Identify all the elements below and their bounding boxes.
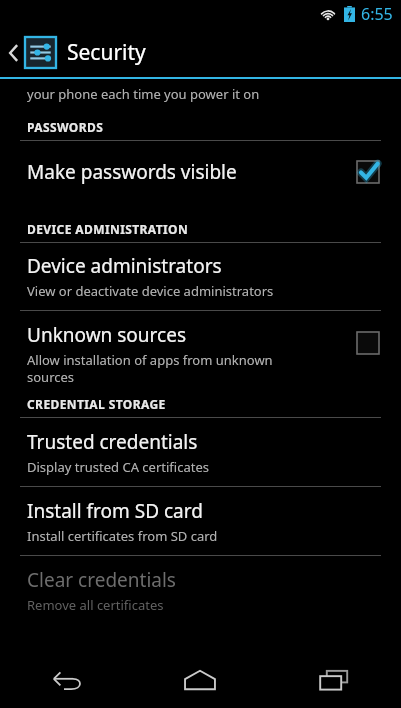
button[interactable]: Home bbox=[133, 652, 267, 708]
button[interactable]: Checked bbox=[355, 159, 381, 185]
staticText: Security bbox=[67, 38, 146, 67]
button[interactable]: Install from SD card bbox=[0, 487, 401, 555]
staticText: CREDENTIAL STORAGE bbox=[27, 396, 166, 412]
button[interactable]: Make passwords visible bbox=[0, 141, 401, 203]
staticText: Remove all certificates bbox=[27, 596, 164, 614]
staticText: Install certificates from SD card bbox=[27, 527, 218, 545]
button[interactable]: Unchecked bbox=[355, 330, 381, 356]
staticText: Clear credentials bbox=[27, 567, 176, 593]
button[interactable]: Trusted credentials bbox=[0, 418, 401, 486]
staticText: Unknown sources bbox=[27, 322, 186, 348]
staticText: your phone each time you power it on bbox=[27, 85, 260, 103]
staticText: DEVICE ADMINISTRATION bbox=[27, 221, 189, 237]
staticText: Device administrators bbox=[27, 253, 222, 279]
button[interactable]: Clear credentials bbox=[0, 556, 401, 624]
button[interactable]: Recent apps bbox=[267, 652, 401, 708]
button[interactable]: Back bbox=[0, 652, 133, 708]
staticText: Trusted credentials bbox=[27, 429, 198, 455]
staticText: Display trusted CA certificates bbox=[27, 458, 209, 476]
staticText: Make passwords visible bbox=[27, 159, 355, 185]
button[interactable]: Device administrators bbox=[0, 243, 401, 310]
staticText: View or deactivate device administrators bbox=[27, 282, 274, 300]
staticText: PASSWORDS bbox=[27, 119, 104, 135]
button[interactable]: Unknown sources bbox=[0, 311, 401, 396]
staticText: 6:55 bbox=[361, 3, 393, 25]
button[interactable]: Navigate up bbox=[0, 28, 401, 77]
staticText: Install from SD card bbox=[27, 498, 203, 524]
staticText: Allow installation of apps from unknown … bbox=[27, 351, 273, 386]
